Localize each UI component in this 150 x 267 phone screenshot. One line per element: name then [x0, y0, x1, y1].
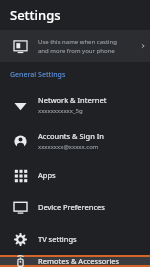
staticText: TV settings: [38, 234, 77, 244]
button[interactable]: Accounts: [0, 123, 150, 159]
staticText: Remotes & Accessories: [38, 256, 120, 266]
button[interactable]: Device Preferences: [0, 191, 150, 223]
button[interactable]: Network: [0, 87, 150, 123]
staticText: Apps: [38, 170, 56, 180]
staticText: Accounts & Sign In: [38, 131, 104, 141]
staticText: Use this name when casting photos, video…: [38, 38, 134, 46]
other: Remotes & Accessories: [14, 255, 27, 267]
other: Device Preferences: [14, 201, 27, 214]
other: TV settings: [14, 233, 27, 246]
other: Apps: [14, 169, 27, 182]
button[interactable]: TV settings: [0, 223, 150, 255]
staticText: Network & Internet: [38, 95, 107, 105]
staticText: and more from your phone: [38, 47, 115, 55]
button[interactable]: Remotes & Accessories: [0, 255, 150, 267]
other: Accounts: [14, 135, 27, 148]
staticText: Settings: [10, 6, 61, 24]
staticText: xxxxxxxx@xxxxx.com: [38, 143, 99, 151]
other: Cast device: [14, 40, 27, 53]
staticText: Device Preferences: [38, 202, 105, 212]
staticText: General Settings: [10, 70, 66, 80]
staticText: xxxxxxxxxxx_5g: [38, 107, 83, 115]
button[interactable]: Apps: [0, 159, 150, 191]
other: Network: [14, 99, 27, 112]
button[interactable]: Cast device: [0, 30, 150, 62]
